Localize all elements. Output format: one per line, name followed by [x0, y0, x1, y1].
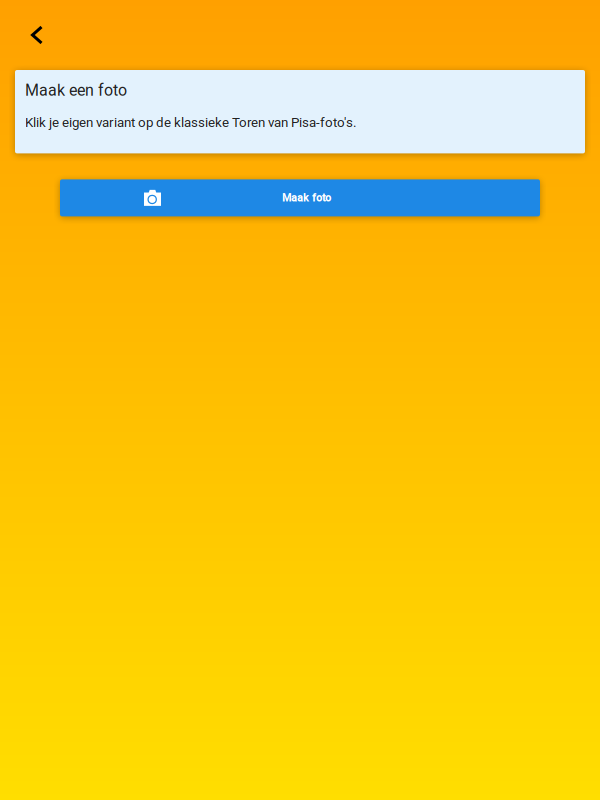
button[interactable]: Back: [16, 13, 58, 57]
button[interactable]: Maak foto: [60, 179, 540, 216]
staticText: Maak een foto: [25, 81, 127, 100]
staticText: Maak foto: [282, 192, 331, 204]
staticText: Klik je eigen variant op de klassieke To…: [25, 115, 357, 130]
